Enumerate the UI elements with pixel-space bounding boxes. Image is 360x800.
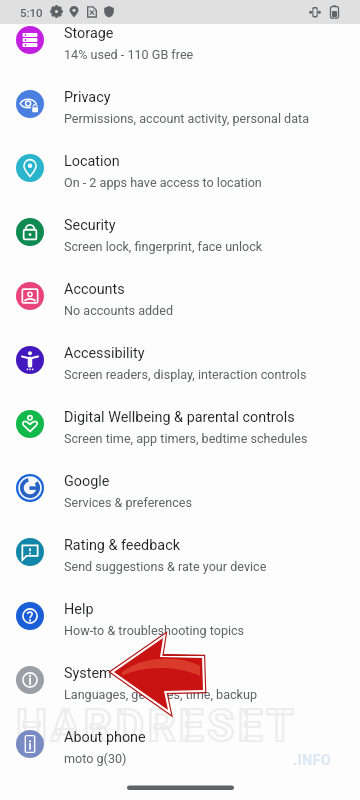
staticText: Location bbox=[64, 153, 120, 170]
staticText: System bbox=[64, 665, 112, 682]
button[interactable]: Accessibility bbox=[0, 328, 360, 392]
staticText: Send suggestions & rate your device bbox=[64, 559, 267, 574]
button[interactable]: Rating & feedback bbox=[0, 520, 360, 584]
staticText: .INFO bbox=[293, 752, 332, 768]
staticText: Help bbox=[64, 601, 94, 618]
staticText: On - 2 apps have access to location bbox=[64, 175, 262, 190]
staticText: Screen time, app timers, bedtime schedul… bbox=[64, 431, 308, 446]
staticText: Rating & feedback bbox=[64, 537, 180, 554]
staticText: No accounts added bbox=[64, 303, 173, 318]
staticText: Screen lock, fingerprint, face unlock bbox=[64, 239, 263, 254]
staticText: 5:10 bbox=[20, 6, 43, 19]
staticText: Security bbox=[64, 217, 116, 234]
button[interactable]: Help bbox=[0, 584, 360, 648]
staticText: Permissions, account activity, personal … bbox=[64, 111, 309, 126]
button[interactable]: About phone bbox=[0, 712, 360, 776]
button[interactable]: Privacy bbox=[0, 72, 360, 136]
staticText: Services & preferences bbox=[64, 495, 192, 510]
staticText: Languages, gestures, time, backup bbox=[64, 687, 257, 702]
staticText: Digital Wellbeing & parental controls bbox=[64, 409, 295, 426]
staticText: Screen readers, display, interaction con… bbox=[64, 367, 307, 382]
staticText: Privacy bbox=[64, 89, 111, 106]
staticText: Google bbox=[64, 473, 110, 490]
button[interactable]: Accounts bbox=[0, 264, 360, 328]
staticText: How-to & troubleshooting topics bbox=[64, 623, 245, 638]
staticText: Accessibility bbox=[64, 345, 145, 362]
button[interactable]: Storage bbox=[0, 8, 360, 72]
staticText: 14% used - 110 GB free bbox=[64, 47, 194, 62]
staticText: About phone bbox=[64, 729, 146, 746]
button[interactable]: Location bbox=[0, 136, 360, 200]
button[interactable]: Google bbox=[0, 456, 360, 520]
staticText: Storage bbox=[64, 25, 114, 42]
button[interactable]: Security bbox=[0, 200, 360, 264]
staticText: HARDRESET bbox=[16, 700, 297, 752]
staticText: Accounts bbox=[64, 281, 125, 298]
staticText: moto g(30) bbox=[64, 751, 127, 766]
button[interactable]: System bbox=[0, 648, 360, 712]
button[interactable]: Digital Wellbeing & parental controls bbox=[0, 392, 360, 456]
